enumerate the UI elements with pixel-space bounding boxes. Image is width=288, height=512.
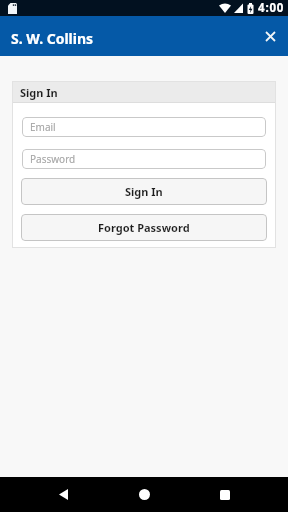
staticText: Password: [30, 152, 76, 166]
staticText: S. W. Collins: [11, 29, 94, 48]
staticText: Sign In: [20, 85, 58, 100]
staticText: Forgot Password: [98, 220, 190, 235]
button[interactable]: Password: [22, 149, 266, 169]
button[interactable]: [259, 25, 281, 47]
button[interactable]: Forgot Password: [21, 214, 267, 241]
button[interactable]: Email: [22, 117, 266, 137]
staticText: Email: [30, 120, 56, 134]
button[interactable]: [198, 477, 252, 512]
staticText: 4:00: [258, 0, 285, 16]
button[interactable]: Sign In: [21, 178, 267, 205]
staticText: Sign In: [125, 184, 163, 199]
button[interactable]: [36, 477, 90, 512]
button[interactable]: [117, 477, 171, 512]
